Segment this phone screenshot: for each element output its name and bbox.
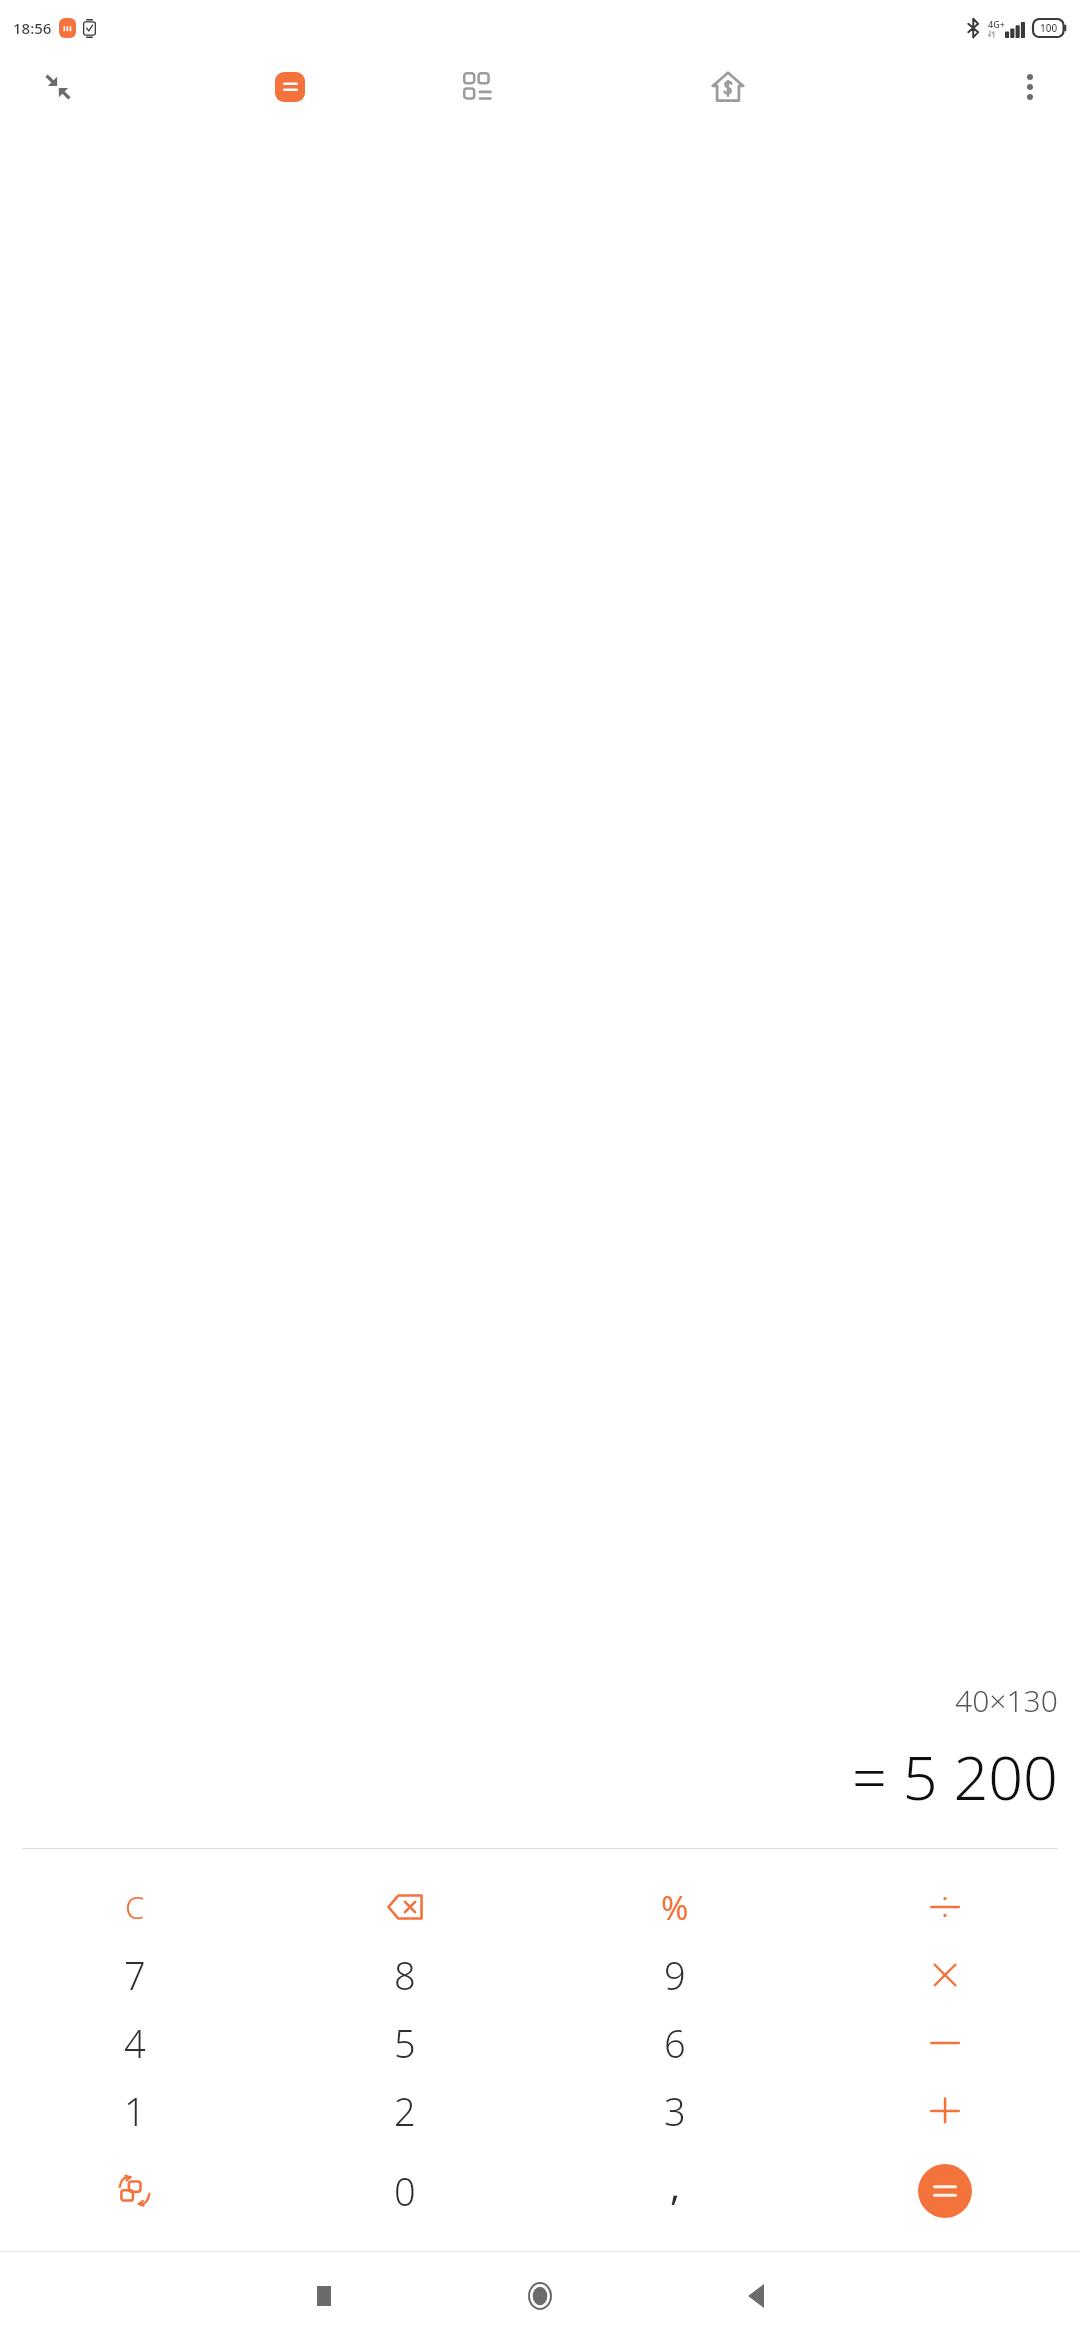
button[interactable]: Backspace [270,1873,540,1941]
staticText: 1 [124,2085,146,2137]
staticText: % [661,1885,689,1930]
button[interactable]: 4 [0,2009,270,2077]
button[interactable]: Minus [810,2009,1080,2077]
staticText: 5 [394,2017,416,2069]
staticText: 4 [124,2017,146,2069]
button[interactable]: Divide [810,1873,1080,1941]
button[interactable]: 5 [270,2009,540,2077]
button[interactable]: 3 [540,2077,810,2145]
button[interactable]: More options [980,56,1080,118]
staticText: 9 [664,1949,686,2001]
staticText: = 5 200 [852,1735,1058,1818]
button[interactable]: Recents [216,2252,432,2340]
button[interactable]: % [540,1873,810,1941]
button[interactable]: Equals [918,2164,972,2218]
button[interactable]: Back [648,2252,864,2340]
staticText: , [670,2159,681,2211]
staticText: 0 [394,2165,416,2217]
button[interactable]: 1 [0,2077,270,2145]
staticText: 100 [1040,21,1058,35]
button[interactable]: Swap [0,2145,270,2237]
button[interactable]: Calculator [232,56,348,118]
staticText: 2 [394,2085,416,2137]
button[interactable]: Multiply [810,1941,1080,2009]
button[interactable]: 8 [270,1941,540,2009]
staticText: 18:56 [13,18,52,38]
staticText: 8 [394,1949,416,2001]
staticText: 3 [664,2085,686,2137]
staticText: 6 [664,2017,686,2069]
staticText: 7 [124,1949,146,2001]
button[interactable]: 2 [270,2077,540,2145]
button[interactable]: C [0,1873,270,1941]
button[interactable]: 7 [0,1941,270,2009]
staticText: C [125,1886,145,1928]
staticText: 4G+ [988,18,1005,30]
button[interactable]: 9 [540,1941,810,2009]
button[interactable]: , [540,2145,810,2237]
button[interactable]: Collapse [0,56,116,118]
button[interactable]: 6 [540,2009,810,2077]
button[interactable]: 0 [270,2145,540,2237]
button[interactable]: Mortgage [670,56,786,118]
button[interactable]: Plus [810,2077,1080,2145]
button[interactable]: Unit converter [420,56,536,118]
button[interactable]: Home [432,2252,648,2340]
staticText: 40×130 [955,1680,1058,1721]
